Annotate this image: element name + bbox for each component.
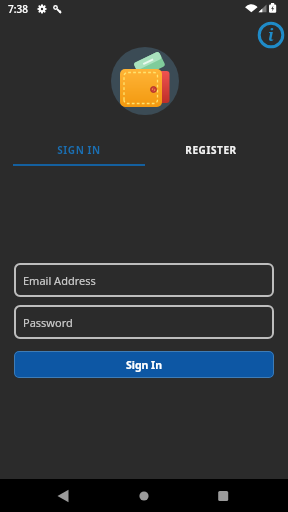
- button[interactable]: SIGN IN: [13, 133, 145, 166]
- button[interactable]: Sign In: [14, 351, 274, 378]
- button[interactable]: [129, 480, 159, 510]
- button[interactable]: [48, 480, 78, 510]
- staticText: i: [268, 24, 274, 46]
- staticText: Sign In: [126, 358, 163, 372]
- button[interactable]: REGISTER: [145, 133, 277, 166]
- button[interactable]: i: [257, 21, 285, 49]
- button[interactable]: [208, 480, 238, 510]
- button[interactable]: Email Address: [14, 263, 274, 297]
- staticText: 7:38: [8, 2, 28, 16]
- staticText: Password: [23, 315, 73, 330]
- staticText: SIGN IN: [57, 143, 101, 157]
- staticText: Email Address: [23, 273, 96, 288]
- staticText: REGISTER: [185, 143, 237, 157]
- button[interactable]: Password: [14, 305, 274, 339]
